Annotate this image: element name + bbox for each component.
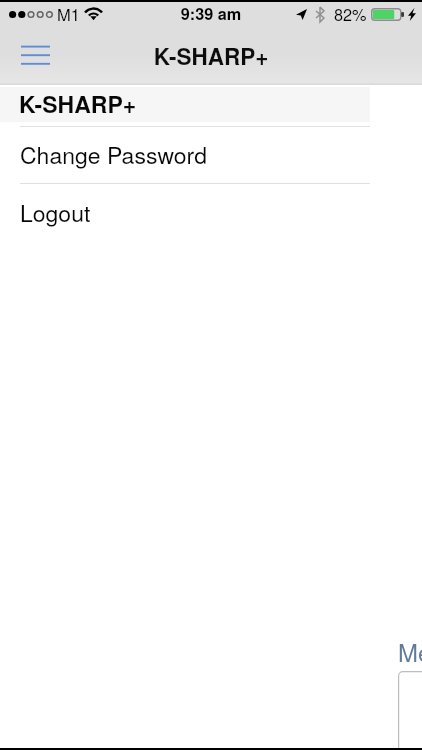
button[interactable]: Logout bbox=[0, 183, 370, 240]
button[interactable]: K-SHARP+ bbox=[0, 87, 370, 122]
staticText: M1 bbox=[57, 2, 80, 26]
staticText: K-SHARP+ bbox=[19, 87, 137, 120]
staticText: Logout bbox=[20, 196, 91, 229]
staticText: 9:39 am bbox=[0, 2, 422, 25]
button[interactable]: Open navigation menu bbox=[0, 30, 72, 85]
button[interactable]: Change Password bbox=[0, 126, 370, 184]
staticText: Change Password bbox=[20, 138, 207, 171]
staticText: Me bbox=[398, 634, 422, 668]
staticText: 82% bbox=[334, 2, 367, 25]
staticText: K-SHARP+ bbox=[0, 40, 422, 72]
